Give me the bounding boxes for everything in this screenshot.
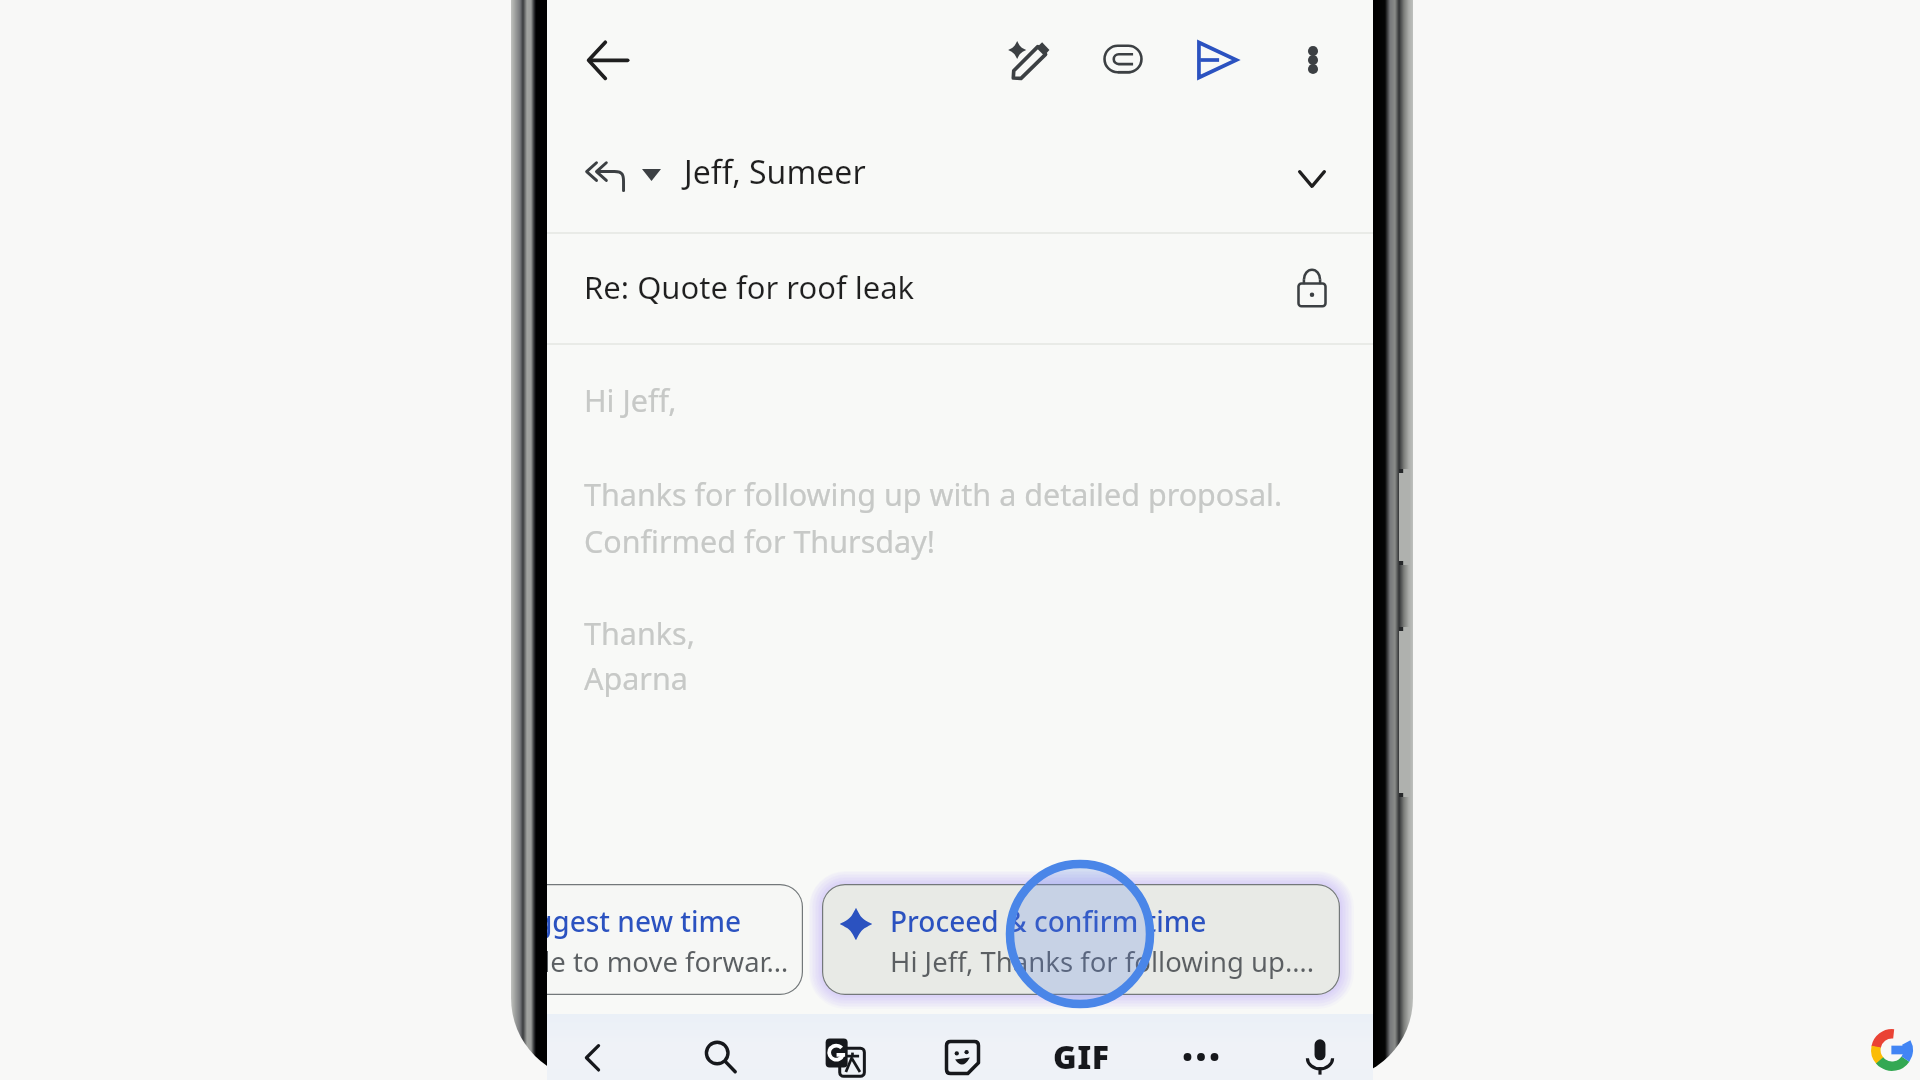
staticText: Thanks, bbox=[584, 612, 695, 654]
button[interactable] bbox=[547, 233, 1373, 343]
button[interactable]: Expand recipients bbox=[1284, 151, 1340, 207]
staticText: Re: Quote for roof leak bbox=[584, 266, 915, 308]
staticText: Aparna bbox=[584, 657, 688, 699]
button[interactable]: Translate bbox=[809, 1021, 881, 1080]
staticText: Confirmed for Thursday! bbox=[584, 520, 935, 562]
staticText: Hi Jeff, Thanks for following up…. bbox=[890, 943, 1315, 980]
staticText: Hi Jeff, bbox=[584, 379, 677, 421]
button[interactable]: Voice input bbox=[1284, 1021, 1356, 1080]
button[interactable]: More bbox=[1165, 1021, 1237, 1080]
button[interactable]: Attach file bbox=[1090, 27, 1155, 92]
staticText: Thanks for following up with a detailed … bbox=[584, 473, 1283, 515]
staticText: Proceed & confirm time bbox=[890, 902, 1207, 940]
staticText: Are you able to move forwar… bbox=[547, 943, 789, 980]
staticText: Jeff, Sumeer bbox=[684, 150, 866, 194]
staticText: GIF bbox=[1053, 1035, 1110, 1079]
button[interactable]: Confidential mode bbox=[1282, 258, 1342, 318]
button[interactable]: Collapse keyboard bbox=[558, 1021, 630, 1080]
button[interactable]: Back bbox=[575, 27, 640, 92]
button[interactable]: More options bbox=[1280, 27, 1345, 92]
button[interactable]: Send bbox=[1184, 27, 1249, 92]
button[interactable]: Stickers bbox=[926, 1021, 998, 1080]
button[interactable]: Search bbox=[684, 1021, 756, 1080]
button[interactable]: Help me write bbox=[995, 27, 1060, 92]
staticText: Suggest new time bbox=[547, 902, 742, 940]
button[interactable]: Proceed & confirm time bbox=[822, 884, 1340, 995]
button[interactable] bbox=[547, 133, 1373, 232]
button[interactable]: Suggest new time bbox=[547, 884, 803, 995]
button[interactable]: GIF bbox=[1045, 1021, 1117, 1080]
